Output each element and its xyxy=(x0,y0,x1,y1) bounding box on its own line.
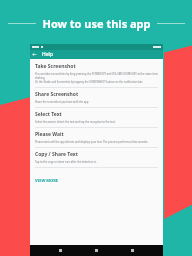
staticText: Copy / Share Text xyxy=(35,151,78,158)
staticText: Select Text xyxy=(35,111,62,118)
button[interactable]: Home xyxy=(91,245,102,256)
staticText: Please Wait xyxy=(35,131,64,138)
staticText: shaking. xyxy=(35,76,46,80)
staticText: Take Screenshot xyxy=(35,63,76,70)
staticText: Tap to the copy or share icon after the … xyxy=(35,160,97,164)
staticText: Help xyxy=(42,51,54,58)
button[interactable]: Back xyxy=(55,245,66,256)
staticText: VIEW MORE xyxy=(35,178,59,183)
staticText: How to use this app xyxy=(42,16,151,31)
staticText: You can take screenshots by long pressin… xyxy=(35,72,158,76)
staticText: Share Screenshot xyxy=(35,91,79,98)
staticText: Please wait until the app detects and di… xyxy=(35,140,149,144)
staticText: Select the area to detect the text and t… xyxy=(35,120,116,124)
staticText: Or the Shake and Screenshot by tapping t… xyxy=(35,80,143,84)
button[interactable]: Back xyxy=(30,50,39,59)
staticText: Share the screenshot you have with the a… xyxy=(35,100,89,104)
button[interactable]: Recent apps xyxy=(127,245,138,256)
button[interactable]: VIEW MORE xyxy=(35,177,59,184)
